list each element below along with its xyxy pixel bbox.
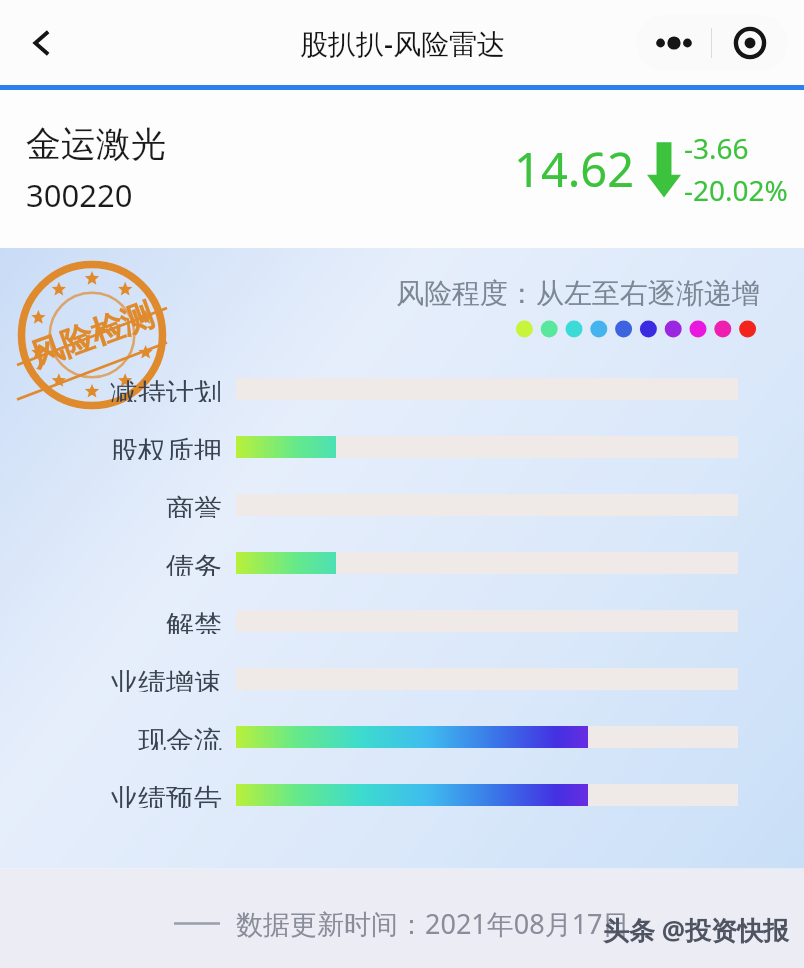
staticText: 金运激光 <box>26 122 166 166</box>
staticText: 业绩预告 <box>110 782 222 808</box>
staticText: 头条 @投资快报 <box>603 912 790 948</box>
staticText: 风险程度：从左至右逐渐递增 <box>396 276 760 311</box>
staticText: 解禁 <box>166 608 222 634</box>
staticText: 14.62 <box>514 137 635 201</box>
staticText: 数据更新时间：2021年08月17日 <box>236 905 630 942</box>
staticText: 业绩增速 <box>110 666 222 692</box>
staticText: 现金流 <box>138 724 222 750</box>
button[interactable]: 股权质押 <box>0 434 804 460</box>
staticText: 300220 <box>26 174 133 216</box>
staticText: 股扒扒-风险雷达 <box>300 24 505 62</box>
button[interactable]: 业绩预告 <box>0 782 804 808</box>
staticText: 股权质押 <box>110 434 222 460</box>
button[interactable]: 商誉 <box>0 492 804 518</box>
staticText: 减持计划 <box>110 376 222 402</box>
button[interactable]: Back <box>12 13 72 73</box>
staticText: 商誉 <box>166 492 222 518</box>
staticText: -3.66 <box>684 129 749 167</box>
button[interactable]: 减持计划 <box>0 376 804 402</box>
staticText: 债务 <box>166 550 222 576</box>
staticText: -20.02% <box>684 171 788 209</box>
button[interactable]: More options <box>636 15 711 71</box>
button[interactable]: 解禁 <box>0 608 804 634</box>
button[interactable]: 现金流 <box>0 724 804 750</box>
button[interactable]: 业绩增速 <box>0 666 804 692</box>
button[interactable]: Close mini program <box>712 15 788 71</box>
button[interactable]: 债务 <box>0 550 804 576</box>
staticText: 风险检测 <box>25 294 159 376</box>
